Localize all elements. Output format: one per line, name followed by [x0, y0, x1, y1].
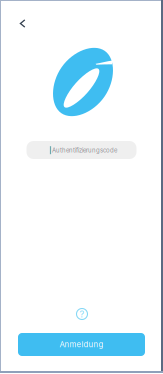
staticText: Anmeldung	[59, 340, 103, 349]
button[interactable]: Authentifizierungscode	[26, 141, 136, 159]
staticText: ?	[79, 308, 84, 320]
button[interactable]: Back	[10, 11, 34, 35]
staticText: Authentifizierungscode	[52, 147, 117, 154]
button[interactable]: Help	[70, 302, 94, 326]
button[interactable]: Anmeldung	[18, 333, 145, 356]
